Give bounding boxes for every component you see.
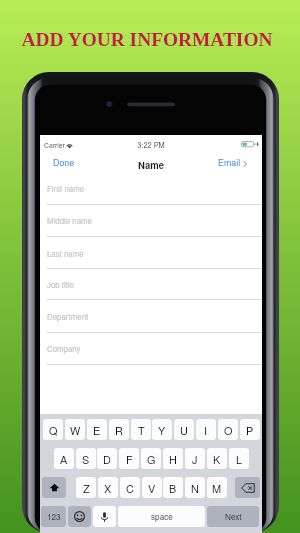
button[interactable]: Dictation bbox=[93, 506, 116, 527]
staticText: F bbox=[126, 451, 133, 467]
button[interactable]: M bbox=[207, 477, 227, 498]
button[interactable]: W bbox=[65, 419, 85, 440]
staticText: space bbox=[151, 511, 173, 523]
staticText: Name bbox=[40, 158, 262, 172]
button[interactable]: A bbox=[54, 448, 74, 469]
staticText: G bbox=[147, 451, 156, 467]
button[interactable]: O bbox=[218, 419, 238, 440]
button[interactable]: L bbox=[229, 448, 249, 469]
button[interactable]: Q bbox=[43, 419, 63, 440]
staticText: X bbox=[104, 480, 112, 496]
staticText: Middle name bbox=[47, 215, 92, 226]
button[interactable]: V bbox=[142, 477, 162, 498]
staticText: H bbox=[169, 451, 177, 467]
button[interactable]: G bbox=[141, 448, 161, 469]
staticText: Job title bbox=[47, 279, 75, 290]
staticText: V bbox=[148, 480, 156, 496]
button[interactable]: Next bbox=[207, 506, 259, 527]
button[interactable]: X bbox=[98, 477, 118, 498]
staticText: Company bbox=[47, 343, 81, 354]
staticText: Last name bbox=[47, 248, 84, 259]
staticText: C bbox=[126, 480, 134, 496]
button[interactable]: Emoji keyboard bbox=[68, 506, 91, 527]
staticText: ADD YOUR INFORMATION bbox=[0, 29, 297, 50]
button[interactable]: First name bbox=[40, 172, 262, 204]
staticText: I bbox=[204, 422, 208, 438]
button[interactable]: U bbox=[174, 419, 194, 440]
staticText: T bbox=[138, 422, 145, 438]
staticText: Y bbox=[158, 422, 166, 438]
button[interactable]: E bbox=[87, 419, 107, 440]
staticText: 123 bbox=[47, 511, 61, 523]
staticText: Q bbox=[49, 422, 58, 438]
button[interactable]: Job title bbox=[40, 268, 262, 300]
staticText: D bbox=[103, 451, 111, 467]
staticText: J bbox=[192, 451, 198, 467]
button[interactable]: Middle name bbox=[40, 204, 262, 236]
button[interactable]: 123 bbox=[41, 506, 66, 527]
button[interactable]: H bbox=[163, 448, 183, 469]
button[interactable]: C bbox=[120, 477, 140, 498]
button[interactable]: Z bbox=[76, 477, 96, 498]
button[interactable]: N bbox=[185, 477, 205, 498]
staticText: Done bbox=[53, 156, 75, 169]
staticText: Next bbox=[225, 511, 242, 523]
staticText: E bbox=[93, 422, 101, 438]
staticText: R bbox=[115, 422, 123, 438]
staticText: S bbox=[82, 451, 90, 467]
button[interactable]: I bbox=[196, 419, 216, 440]
button[interactable]: K bbox=[207, 448, 227, 469]
button[interactable]: Shift bbox=[42, 477, 66, 498]
staticText: M bbox=[212, 480, 222, 496]
button[interactable]: F bbox=[119, 448, 139, 469]
staticText: First name bbox=[47, 183, 85, 194]
staticText: Email > bbox=[218, 156, 248, 169]
button[interactable]: Done bbox=[48, 154, 79, 171]
button[interactable]: Email > bbox=[214, 154, 253, 171]
staticText: 3:22 PM bbox=[40, 140, 262, 151]
button[interactable]: space bbox=[118, 506, 205, 527]
button[interactable]: Backspace bbox=[235, 477, 260, 498]
button[interactable]: Company bbox=[40, 332, 262, 365]
staticText: Department bbox=[47, 311, 89, 322]
staticText: W bbox=[70, 422, 81, 438]
button[interactable]: B bbox=[163, 477, 183, 498]
button[interactable]: P bbox=[240, 419, 260, 440]
staticText: A bbox=[60, 451, 68, 467]
button[interactable]: R bbox=[109, 419, 129, 440]
button[interactable]: J bbox=[185, 448, 205, 469]
staticText: N bbox=[191, 480, 199, 496]
staticText: Z bbox=[83, 480, 90, 496]
staticText: O bbox=[224, 422, 233, 438]
staticText: Carrier bbox=[44, 140, 65, 150]
button[interactable]: T bbox=[131, 419, 151, 440]
staticText: U bbox=[180, 422, 188, 438]
staticText: L bbox=[236, 451, 243, 467]
staticText: B bbox=[169, 480, 177, 496]
button[interactable]: S bbox=[76, 448, 96, 469]
button[interactable]: Last name bbox=[40, 237, 262, 269]
button[interactable]: Y bbox=[152, 419, 172, 440]
button[interactable]: D bbox=[97, 448, 117, 469]
button[interactable]: Department bbox=[40, 300, 262, 332]
staticText: P bbox=[246, 422, 254, 438]
staticText: K bbox=[213, 451, 221, 467]
